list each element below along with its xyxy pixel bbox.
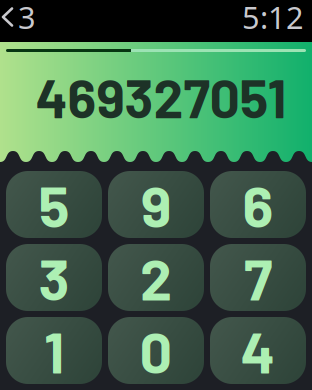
staticText: 5:12 [242,0,304,37]
staticText: 3 [38,243,69,312]
staticText: 469327051 [35,65,286,129]
staticText: 9 [141,170,171,239]
button[interactable]: 2 [108,244,204,311]
button[interactable]: 3 [6,244,102,311]
staticText: 3 [18,0,36,37]
button[interactable]: 3 [3,3,36,31]
staticText: 7 [244,243,272,312]
button[interactable]: 5 [6,171,102,238]
staticText: 6 [242,170,273,239]
staticText: 1 [44,316,64,385]
staticText: 5 [38,170,69,239]
staticText: 0 [139,316,172,385]
staticText: 4 [240,316,275,385]
button[interactable]: 9 [108,171,204,238]
button[interactable]: 4 [210,317,306,384]
staticText: 2 [140,243,172,312]
button[interactable]: 0 [108,317,204,384]
button[interactable]: 1 [6,317,102,384]
button[interactable]: 7 [210,244,306,311]
button[interactable]: 6 [210,171,306,238]
